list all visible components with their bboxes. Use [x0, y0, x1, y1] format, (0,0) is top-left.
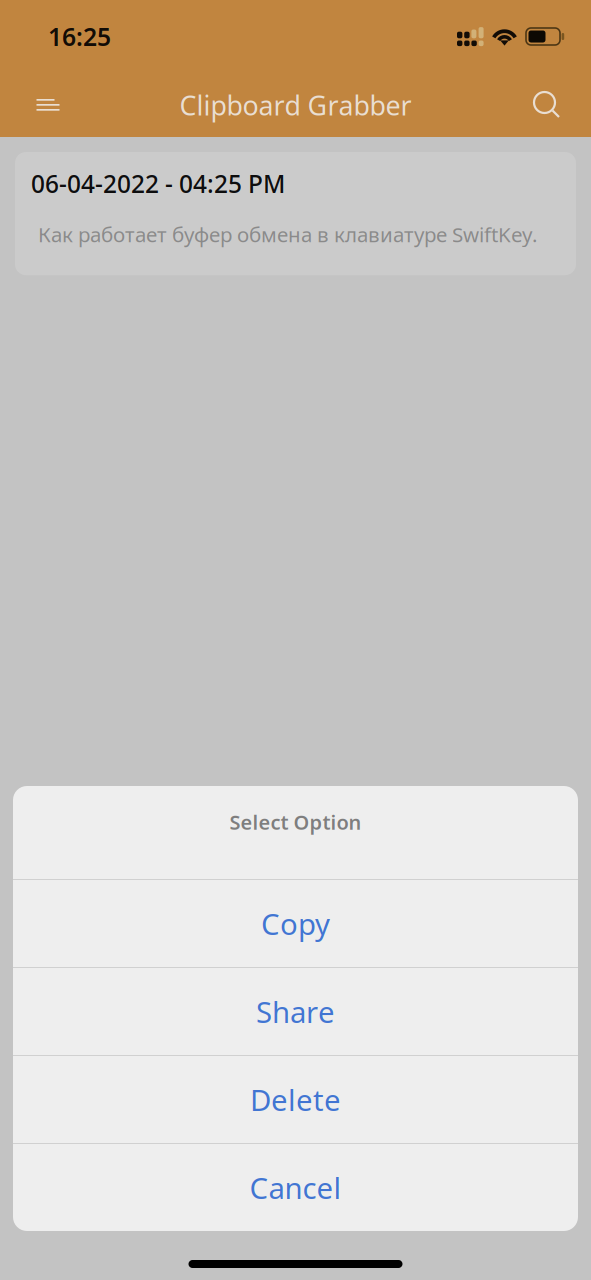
staticText: Share	[256, 991, 335, 1031]
button[interactable]: Share	[13, 968, 578, 1055]
button[interactable]: 06-04-2022 - 04:25 PM	[15, 152, 576, 275]
staticText: Cancel	[249, 1167, 341, 1207]
staticText: Clipboard Grabber	[179, 87, 411, 123]
button[interactable]: Delete	[13, 1056, 578, 1143]
button[interactable]: Menu	[20, 77, 76, 133]
staticText: Select Option	[229, 808, 361, 836]
staticText: Как работает буфер обмена в клавиатуре S…	[38, 220, 538, 248]
staticText: Copy	[261, 903, 330, 943]
staticText: Delete	[250, 1079, 341, 1119]
button[interactable]: Cancel	[13, 1144, 578, 1231]
staticText: 16:25	[48, 20, 111, 53]
button[interactable]: Copy	[13, 880, 578, 967]
button[interactable]: Search	[519, 77, 575, 133]
staticText: 06-04-2022 - 04:25 PM	[31, 167, 285, 200]
